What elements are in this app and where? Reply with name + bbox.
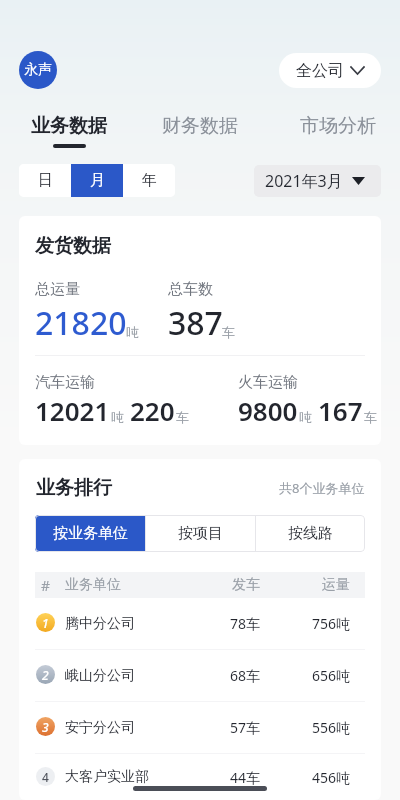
staticText: 220 bbox=[130, 393, 175, 428]
staticText: 大客户实业部 bbox=[65, 768, 149, 786]
staticText: 9800 bbox=[238, 393, 298, 428]
staticText: 68车 bbox=[180, 666, 260, 685]
staticText: 全公司 bbox=[296, 61, 344, 81]
staticText: 发货数据 bbox=[35, 234, 111, 258]
staticText: 167 bbox=[318, 393, 363, 428]
staticText: 财务数据 bbox=[162, 114, 238, 138]
staticText: 业务排行 bbox=[36, 476, 112, 500]
button[interactable]: 2021年3月 bbox=[254, 165, 381, 197]
button[interactable]: 月 bbox=[71, 164, 123, 197]
staticText: 4 bbox=[42, 769, 49, 785]
staticText: 21820 bbox=[35, 301, 127, 344]
staticText: 吨 bbox=[126, 324, 139, 340]
staticText: 汽车运输 bbox=[35, 373, 95, 392]
staticText: # bbox=[41, 576, 51, 595]
staticText: 总运量 bbox=[35, 280, 80, 299]
button[interactable]: 永声 bbox=[19, 51, 57, 89]
staticText: 月 bbox=[90, 171, 105, 190]
staticText: 756吨 bbox=[260, 614, 350, 633]
staticText: 吨 bbox=[111, 409, 124, 425]
staticText: 发车 bbox=[180, 576, 260, 594]
staticText: 业务单位 bbox=[65, 576, 121, 594]
button[interactable]: 2 bbox=[33, 650, 350, 701]
staticText: 57车 bbox=[180, 718, 260, 737]
button[interactable]: 业务数据 bbox=[9, 114, 129, 148]
staticText: 按业务单位 bbox=[53, 524, 128, 543]
staticText: 安宁分公司 bbox=[65, 719, 135, 737]
staticText: 按项目 bbox=[178, 524, 223, 543]
staticText: 387 bbox=[168, 301, 223, 344]
staticText: 车 bbox=[222, 324, 235, 340]
button[interactable]: 1 bbox=[33, 598, 350, 649]
button[interactable]: 4 bbox=[33, 754, 350, 800]
staticText: 按线路 bbox=[288, 524, 333, 543]
staticText: 车 bbox=[176, 409, 189, 425]
button[interactable]: 按业务单位 bbox=[35, 515, 145, 552]
staticText: 2021年3月 bbox=[265, 170, 343, 192]
staticText: 市场分析 bbox=[300, 114, 376, 138]
staticText: 运量 bbox=[260, 576, 350, 594]
staticText: 车 bbox=[364, 409, 377, 425]
button[interactable]: 年 bbox=[123, 164, 175, 197]
staticText: 12021 bbox=[35, 393, 110, 428]
staticText: 火车运输 bbox=[238, 373, 298, 392]
staticText: 456吨 bbox=[260, 768, 350, 787]
staticText: 吨 bbox=[299, 409, 312, 425]
staticText: 永声 bbox=[24, 61, 52, 79]
staticText: 556吨 bbox=[260, 718, 350, 737]
staticText: 44车 bbox=[180, 768, 260, 787]
button[interactable]: 按线路 bbox=[256, 515, 365, 552]
staticText: 年 bbox=[142, 171, 157, 190]
staticText: 日 bbox=[38, 171, 53, 190]
staticText: 2 bbox=[42, 667, 49, 683]
button[interactable]: 全公司 bbox=[279, 53, 381, 88]
button[interactable]: 按项目 bbox=[146, 515, 255, 552]
staticText: 3 bbox=[42, 719, 49, 735]
staticText: 峨山分公司 bbox=[65, 667, 135, 685]
staticText: 656吨 bbox=[260, 666, 350, 685]
staticText: 腾中分公司 bbox=[65, 615, 135, 633]
button[interactable]: 3 bbox=[33, 702, 350, 753]
staticText: 共8个业务单位 bbox=[279, 479, 365, 497]
button[interactable]: 财务数据 bbox=[140, 114, 260, 148]
button[interactable]: 市场分析 bbox=[278, 114, 398, 148]
button[interactable]: 日 bbox=[19, 164, 71, 197]
staticText: 总车数 bbox=[168, 280, 213, 299]
staticText: 业务数据 bbox=[31, 114, 107, 138]
staticText: 1 bbox=[42, 615, 49, 631]
staticText: 78车 bbox=[180, 614, 260, 633]
